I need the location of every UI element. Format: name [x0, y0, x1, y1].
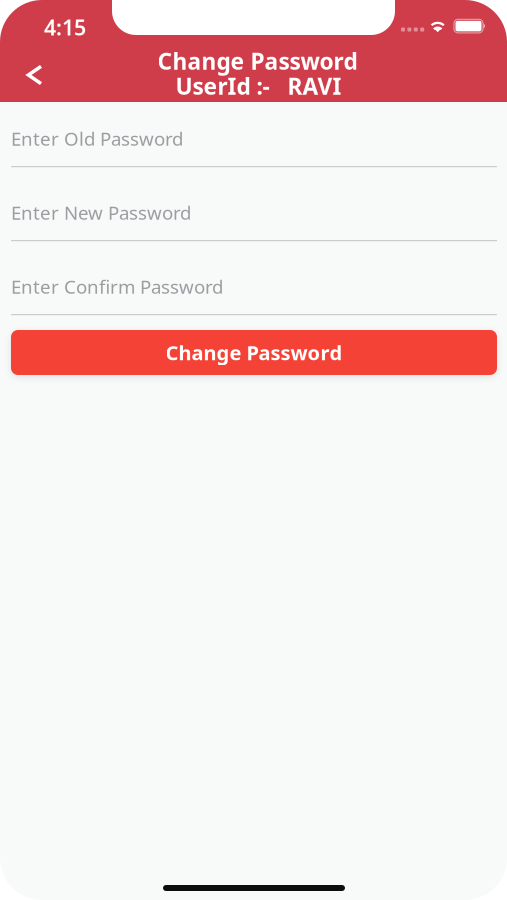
- staticText: Change Password: [165, 339, 342, 366]
- staticText: 4:15: [44, 13, 86, 41]
- button[interactable]: Back: [6, 50, 64, 100]
- staticText: Change Password: [157, 46, 357, 76]
- staticText: Enter Confirm Password: [11, 274, 223, 299]
- button[interactable]: Enter Old Password: [0, 114, 507, 188]
- staticText: UserId :- RAVI: [175, 71, 341, 101]
- button[interactable]: Change Password: [11, 330, 497, 375]
- staticText: Enter Old Password: [11, 126, 183, 151]
- staticText: Enter New Password: [11, 200, 191, 225]
- button[interactable]: Enter Confirm Password: [0, 262, 507, 336]
- button[interactable]: Enter New Password: [0, 188, 507, 262]
